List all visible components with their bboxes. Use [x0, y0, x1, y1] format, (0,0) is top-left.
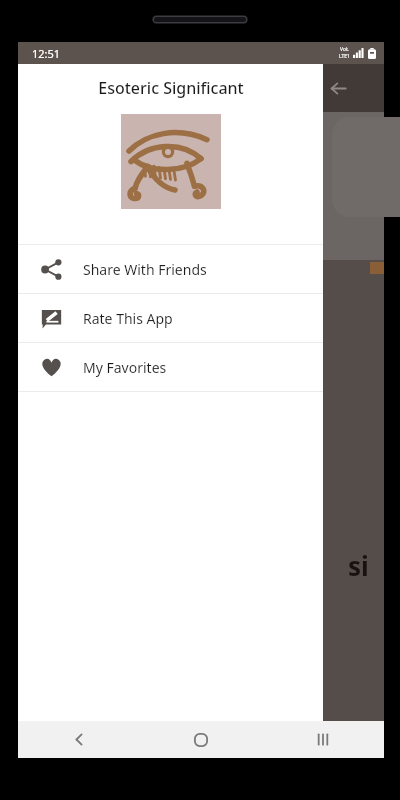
button[interactable]: Rate This App: [18, 294, 323, 342]
staticText: VoŁ: [340, 46, 349, 53]
staticText: Share With Friends: [83, 260, 207, 279]
staticText: Esoteric Significant: [98, 77, 244, 99]
staticText: My Favorites: [83, 358, 167, 377]
button[interactable]: My Favorites: [18, 343, 323, 391]
staticText: Rate This App: [83, 309, 173, 328]
button[interactable]: Back: [18, 721, 140, 758]
staticText: LTE1: [339, 53, 350, 60]
button[interactable]: Home: [140, 721, 262, 758]
button[interactable]: Back: [316, 66, 360, 110]
button[interactable]: Share With Friends: [18, 245, 323, 293]
button[interactable]: Recent apps: [262, 721, 384, 758]
staticText: 12:51: [32, 46, 61, 61]
staticText: si: [348, 548, 369, 583]
